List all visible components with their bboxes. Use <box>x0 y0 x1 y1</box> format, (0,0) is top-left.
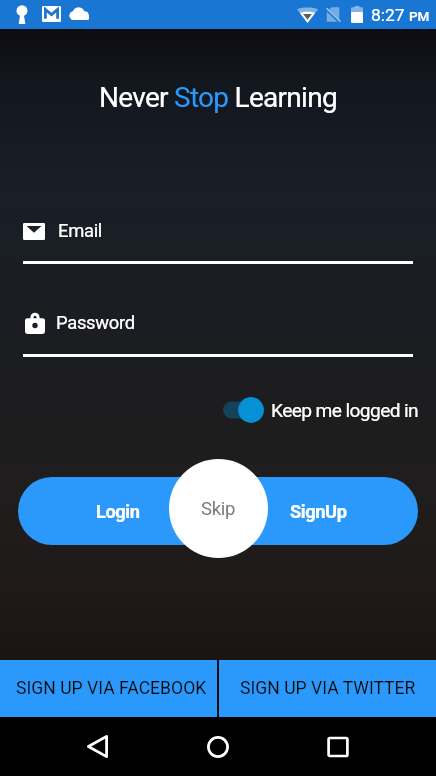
staticText: Keep me logged in <box>271 399 419 422</box>
staticText: Skip <box>201 498 236 520</box>
staticText: PM <box>409 8 430 24</box>
button[interactable]: Keep me logged in <box>223 391 419 429</box>
staticText: SignUp <box>290 501 347 522</box>
staticText: SIGN UP VIA TWITTER <box>240 678 416 699</box>
staticText: SIGN UP VIA FACEBOOK <box>16 678 207 699</box>
button[interactable]: Skip <box>169 459 268 558</box>
staticText: Password <box>56 312 135 334</box>
staticText: Login <box>96 501 140 522</box>
button[interactable]: Recent apps <box>302 717 374 776</box>
staticText: Never Stop Learning <box>0 81 436 114</box>
button[interactable]: Home <box>182 717 254 776</box>
staticText: Email <box>58 220 103 242</box>
button[interactable]: Login <box>18 477 218 545</box>
button[interactable]: SIGN UP VIA FACEBOOK <box>0 660 217 717</box>
button[interactable]: Back <box>61 717 133 776</box>
staticText: 8:27 <box>371 5 405 25</box>
button[interactable]: SignUp <box>218 477 418 545</box>
button[interactable]: SIGN UP VIA TWITTER <box>219 660 436 717</box>
